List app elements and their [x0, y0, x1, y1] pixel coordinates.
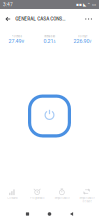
staticText: Temporizador — [54, 197, 70, 200]
button[interactable]: More options — [80, 12, 99, 26]
staticText: Voltaje — [78, 35, 87, 38]
button[interactable]: Temporizador de bucle — [74, 188, 99, 203]
staticText: Potencia — [11, 35, 21, 38]
staticText: W — [21, 40, 24, 43]
staticText: 226.90 — [73, 38, 89, 44]
staticText: Consumo — [7, 197, 18, 200]
staticText: Programado — [30, 197, 45, 200]
button[interactable]: Consumo — [0, 188, 25, 200]
staticText: Intensidad — [43, 35, 55, 38]
staticText: ▪▪ ◣ ⌃ ▭ — [76, 2, 96, 7]
staticText: GENERAL CASA CONS... — [15, 16, 65, 22]
staticText: Temporizador de bucle — [79, 197, 95, 203]
staticText: 3:47 — [3, 2, 13, 7]
button[interactable]: Home — [38, 208, 60, 220]
button[interactable]: Back — [60, 208, 82, 220]
staticText: V — [89, 40, 91, 43]
button[interactable]: Programado — [25, 188, 50, 200]
button[interactable]: Back — [0, 13, 15, 25]
staticText: 27.49 — [8, 38, 21, 44]
staticText: A — [53, 40, 55, 43]
button[interactable]: Temporizador — [49, 188, 74, 200]
staticText: 0.21 — [43, 38, 53, 44]
button[interactable]: Power — [28, 94, 71, 137]
button[interactable]: Recents — [16, 208, 38, 220]
